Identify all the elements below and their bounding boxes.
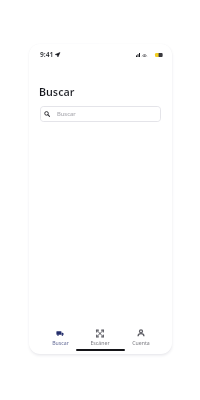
button[interactable]: Buscar bbox=[40, 106, 161, 122]
staticText: Buscar bbox=[57, 110, 76, 118]
staticText: 9:41 bbox=[40, 50, 54, 59]
button[interactable]: Cuenta bbox=[124, 326, 158, 348]
staticText: Buscar bbox=[52, 339, 69, 346]
button[interactable]: Buscar bbox=[43, 326, 77, 348]
staticText: Escáner bbox=[90, 339, 110, 346]
staticText: Cuenta bbox=[132, 339, 150, 346]
staticText: Buscar bbox=[39, 85, 75, 100]
button[interactable]: Escáner bbox=[83, 326, 117, 348]
